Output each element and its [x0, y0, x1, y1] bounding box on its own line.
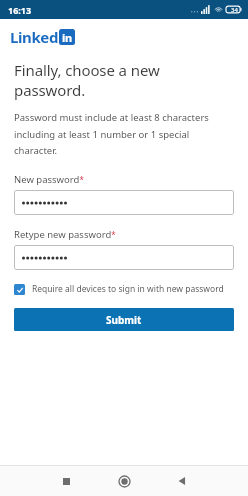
- staticText: 16:13: [8, 4, 32, 16]
- staticText: 34: [231, 6, 238, 14]
- staticText: Password must include at least 8 charact…: [14, 111, 234, 156]
- staticText: Linked: [10, 27, 58, 47]
- button[interactable]: Back: [163, 466, 201, 496]
- button[interactable]: Submit: [14, 308, 234, 331]
- button[interactable]: Recent apps: [47, 466, 85, 496]
- staticText: Retype new password*: [14, 228, 116, 241]
- staticText: in: [62, 30, 72, 45]
- staticText: Finally, choose a new password.: [14, 60, 234, 100]
- button[interactable]: [14, 245, 234, 270]
- button[interactable]: [14, 190, 234, 215]
- staticText: New password*: [14, 173, 84, 186]
- staticText: Submit: [106, 313, 142, 327]
- button[interactable]: Require all devices to sign in with new …: [14, 282, 234, 296]
- button[interactable]: Home: [105, 466, 143, 496]
- staticText: Require all devices to sign in with new …: [32, 283, 224, 295]
